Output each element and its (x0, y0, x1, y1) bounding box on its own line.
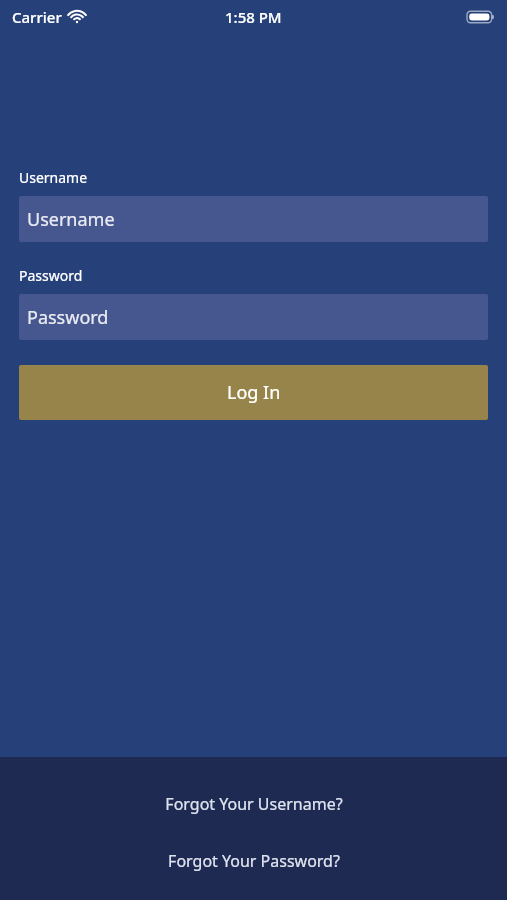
staticText: Carrier (12, 7, 62, 27)
button[interactable]: Password (19, 294, 488, 340)
staticText: Username (27, 207, 115, 232)
staticText: Username (19, 168, 88, 187)
staticText: Password (19, 266, 83, 285)
button[interactable]: Forgot Your Username? (0, 789, 507, 819)
staticText: Log In (227, 380, 281, 405)
staticText: Forgot Your Password? (168, 850, 340, 872)
staticText: Password (27, 305, 109, 330)
button[interactable]: Forgot Your Password? (0, 846, 507, 876)
button[interactable]: Log In (19, 365, 488, 420)
staticText: Forgot Your Username? (165, 793, 343, 815)
button[interactable]: Username (19, 196, 488, 242)
staticText: 1:58 PM (225, 7, 282, 27)
